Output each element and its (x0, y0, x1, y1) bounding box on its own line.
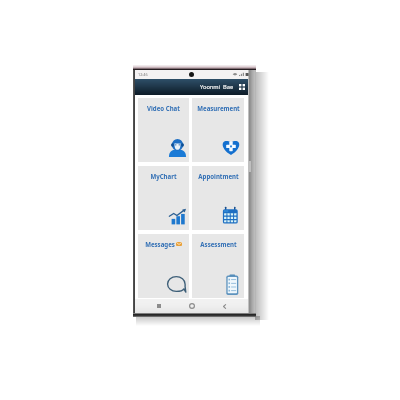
staticText: Video Chat (147, 104, 180, 112)
button[interactable]: Home (185, 299, 199, 313)
button[interactable]: Back (217, 299, 231, 313)
button[interactable]: MyChart (138, 166, 189, 230)
button[interactable]: Video Chat (138, 98, 189, 162)
staticText: MyChart (150, 172, 177, 180)
staticText: Yoonmi Bae (200, 83, 234, 91)
button[interactable]: Assessment (192, 234, 244, 298)
button[interactable]: Measurement (192, 98, 244, 162)
staticText: 12:46 (138, 72, 148, 77)
staticText: Appointment (198, 172, 239, 180)
staticText: Assessment (200, 240, 237, 248)
button[interactable]: Messages (138, 234, 189, 298)
staticText: Measurement (197, 104, 240, 112)
button[interactable]: Menu (239, 84, 245, 90)
button[interactable]: Appointment (192, 166, 244, 230)
staticText: Messages (145, 240, 175, 248)
button[interactable]: Recents (152, 299, 166, 313)
